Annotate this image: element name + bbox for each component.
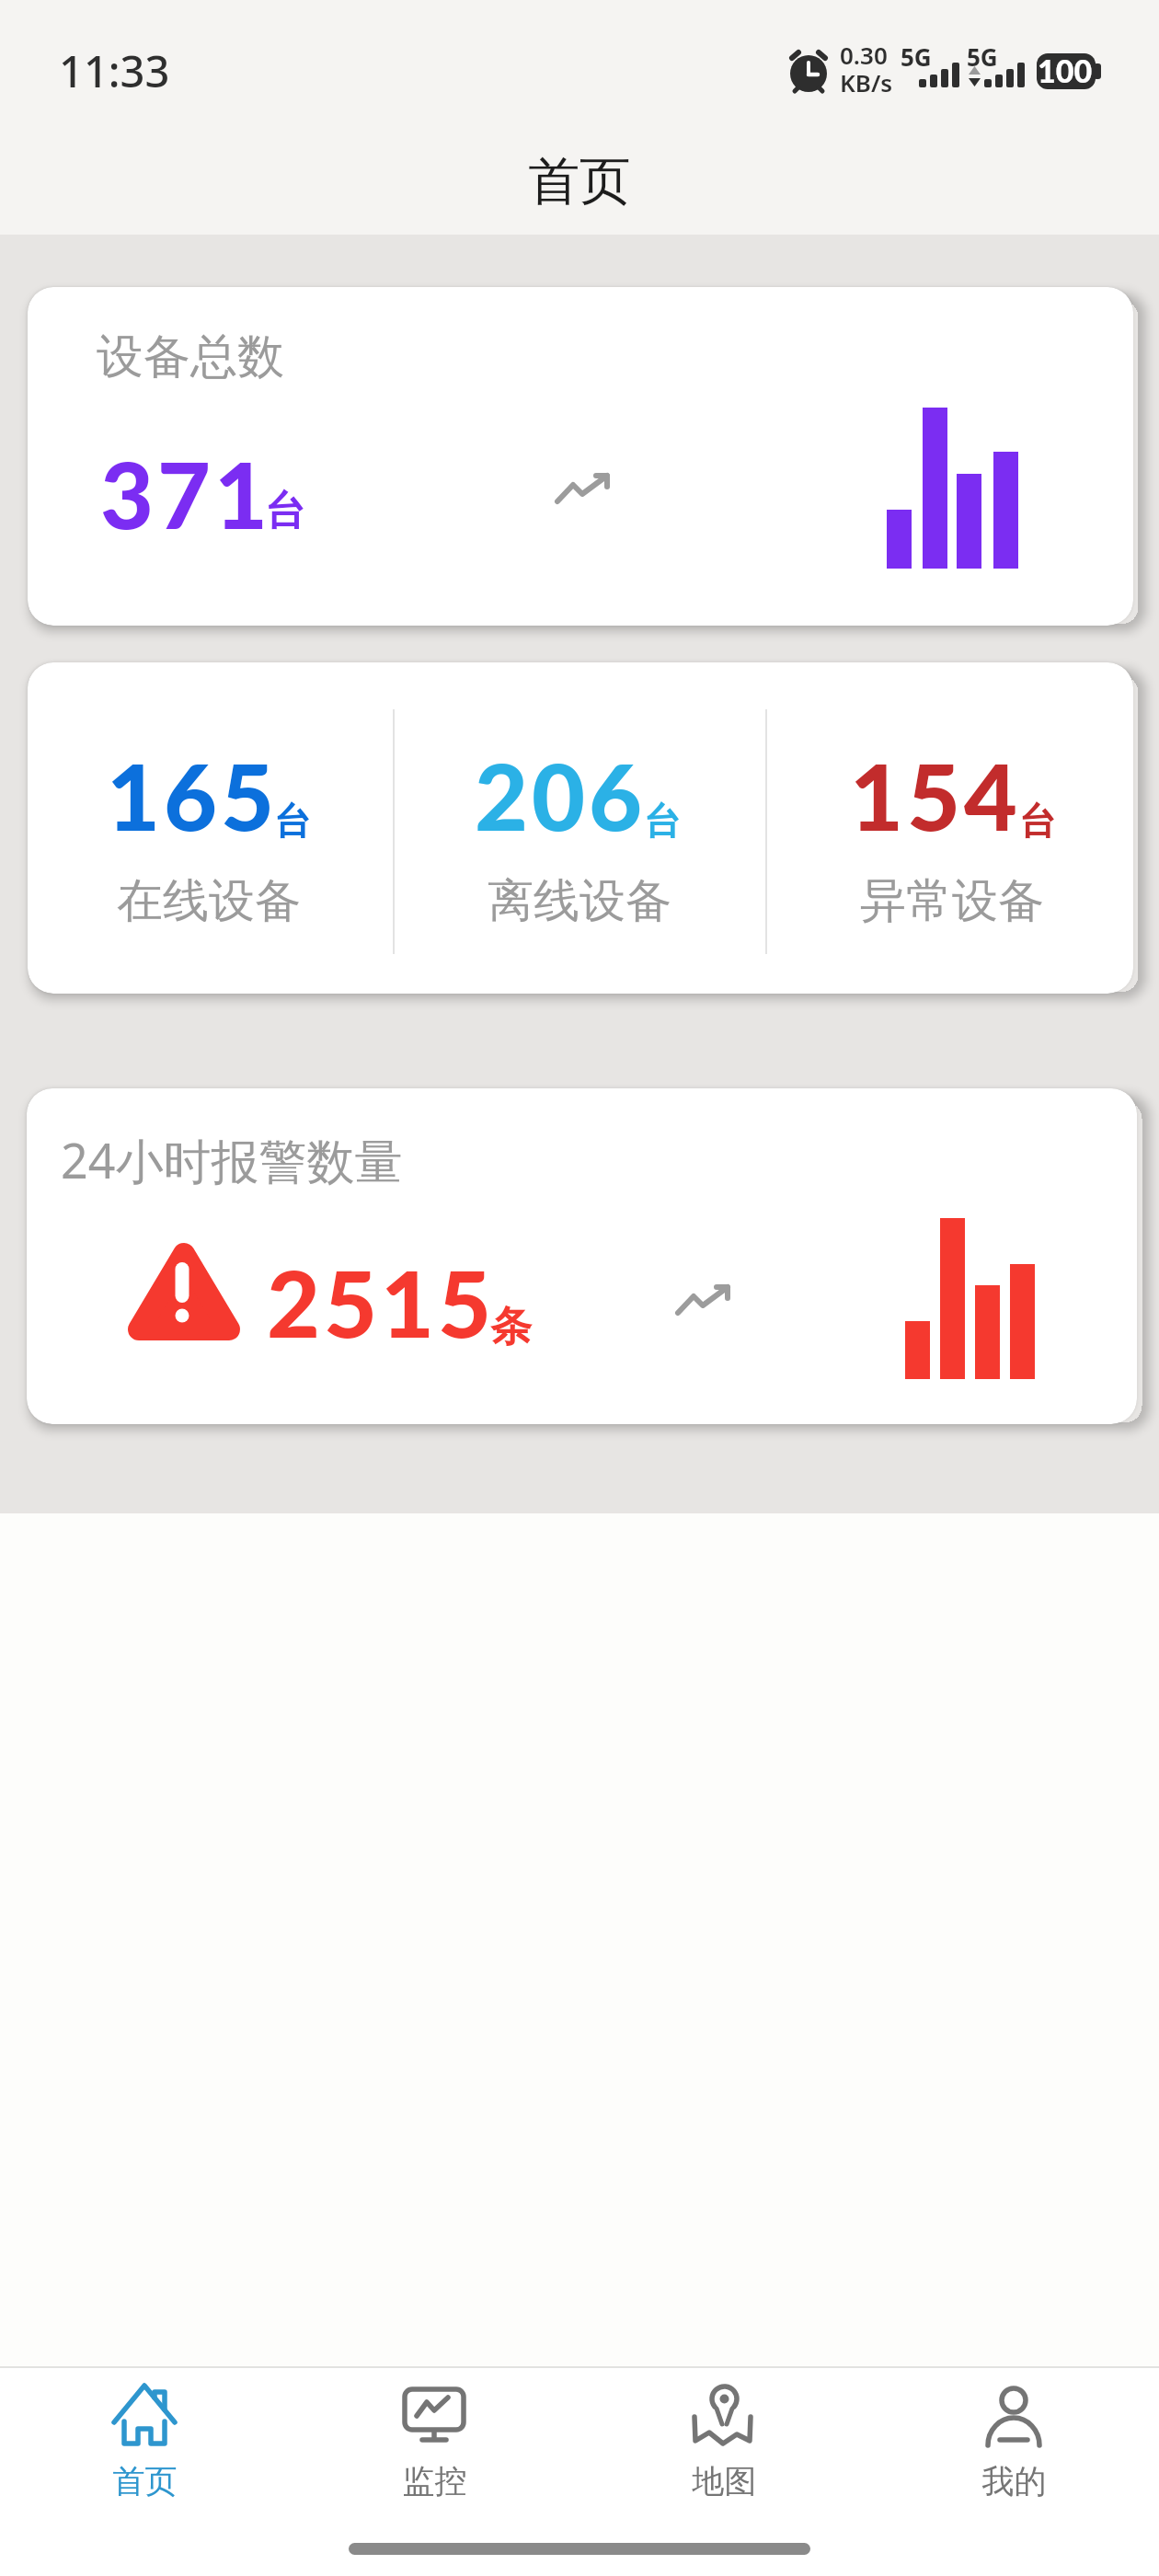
staticText: 371 (100, 438, 271, 548)
button[interactable]: 24小时报警数量 (27, 1088, 1137, 1424)
staticText: 154 (850, 740, 1021, 850)
button[interactable]: 165 (28, 662, 1133, 994)
staticText: 我的 (869, 2461, 1159, 2501)
button[interactable]: 监控 (290, 2372, 579, 2519)
staticText: 异常设备 (860, 872, 1044, 930)
button[interactable]: 地图 (579, 2372, 869, 2519)
staticText: 在线设备 (117, 872, 301, 930)
staticText: 5G (967, 40, 998, 73)
staticText: 100 (1038, 52, 1093, 89)
button[interactable]: 首页 (0, 2372, 290, 2519)
staticText: 条 (490, 1301, 532, 1353)
staticText: 206 (475, 740, 646, 850)
staticText: 0.30 (840, 39, 888, 71)
staticText: 台 (644, 798, 681, 844)
button[interactable]: 设备总数 (28, 287, 1133, 626)
staticText: 首页 (0, 2461, 290, 2501)
staticText: 地图 (579, 2461, 869, 2501)
staticText: 11:33 (59, 41, 170, 100)
staticText: 监控 (290, 2461, 579, 2501)
staticText: 台 (274, 798, 311, 844)
staticText: 设备总数 (97, 328, 284, 386)
staticText: 台 (1019, 798, 1056, 844)
staticText: 24小时报警数量 (61, 1127, 403, 1192)
button[interactable]: 我的 (869, 2372, 1159, 2519)
staticText: 5G (901, 40, 932, 73)
staticText: 2515 (267, 1247, 495, 1357)
staticText: 离线设备 (488, 872, 671, 930)
staticText: KB/s (840, 66, 893, 98)
staticText: 165 (107, 740, 278, 850)
staticText: 首页 (0, 149, 1159, 214)
staticText: 台 (265, 486, 305, 536)
